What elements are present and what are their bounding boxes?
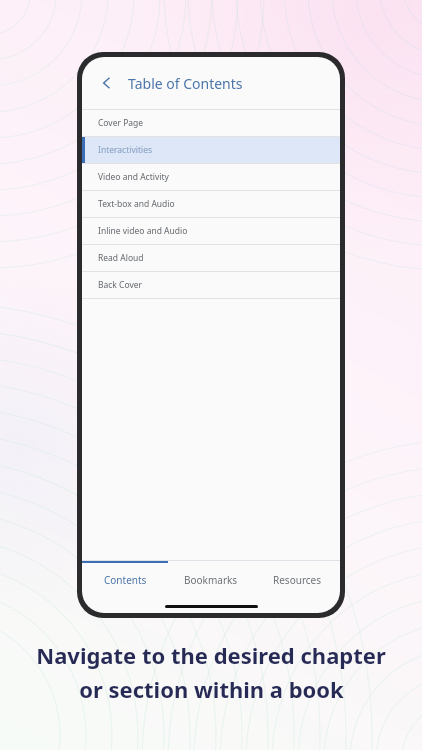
button[interactable]: Interactivities bbox=[82, 137, 340, 163]
button[interactable]: Inline video and Audio bbox=[82, 218, 340, 244]
staticText: Inline video and Audio bbox=[98, 225, 188, 237]
button[interactable]: Bookmarks bbox=[168, 561, 254, 599]
staticText: Back Cover bbox=[98, 279, 143, 291]
staticText: Cover Page bbox=[98, 117, 144, 129]
staticText: Read Aloud bbox=[98, 252, 144, 264]
staticText: Interactivities bbox=[98, 144, 153, 156]
staticText: or section within a book bbox=[79, 674, 344, 704]
staticText: Table of Contents bbox=[128, 74, 243, 93]
staticText: Resources bbox=[273, 573, 322, 587]
button[interactable]: Back bbox=[94, 70, 120, 96]
staticText: Video and Activity bbox=[98, 171, 169, 183]
staticText: Text-box and Audio bbox=[98, 198, 175, 210]
button[interactable]: Resources bbox=[254, 561, 340, 599]
staticText: Bookmarks bbox=[184, 573, 238, 587]
button[interactable]: Back Cover bbox=[82, 272, 340, 298]
button[interactable]: Read Aloud bbox=[82, 245, 340, 271]
staticText: Contents bbox=[104, 573, 147, 587]
button[interactable]: Cover Page bbox=[82, 110, 340, 136]
button[interactable]: Contents bbox=[82, 561, 168, 599]
button[interactable]: Text-box and Audio bbox=[82, 191, 340, 217]
button[interactable]: Video and Activity bbox=[82, 164, 340, 190]
staticText: Navigate to the desired chapter bbox=[36, 640, 386, 670]
